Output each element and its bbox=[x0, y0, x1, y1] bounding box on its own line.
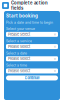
staticText: Select a date bbox=[6, 51, 27, 55]
button[interactable]: Please select bbox=[6, 68, 58, 73]
button[interactable]: Continue bbox=[6, 75, 58, 80]
staticText: Please select bbox=[8, 44, 30, 49]
button[interactable]: Please select bbox=[6, 44, 58, 49]
staticText: Please select bbox=[8, 32, 30, 37]
staticText: v bbox=[54, 69, 56, 73]
staticText: v bbox=[54, 45, 56, 48]
staticText: Please select bbox=[8, 69, 30, 73]
staticText: v bbox=[54, 32, 56, 36]
staticText: Select a time bbox=[6, 63, 27, 67]
staticText: Select a service bbox=[6, 39, 32, 43]
button[interactable]: Please select bbox=[6, 56, 58, 61]
staticText: v bbox=[54, 57, 56, 61]
staticText: Please select bbox=[8, 56, 30, 61]
staticText: Complete action fields bbox=[11, 0, 48, 11]
staticText: Start booking bbox=[6, 13, 38, 18]
button[interactable]: Please select bbox=[6, 32, 58, 37]
staticText: Pick a date and time to begin bbox=[6, 20, 53, 25]
staticText: Select your venue bbox=[6, 27, 35, 31]
staticText: Continue bbox=[24, 76, 39, 80]
